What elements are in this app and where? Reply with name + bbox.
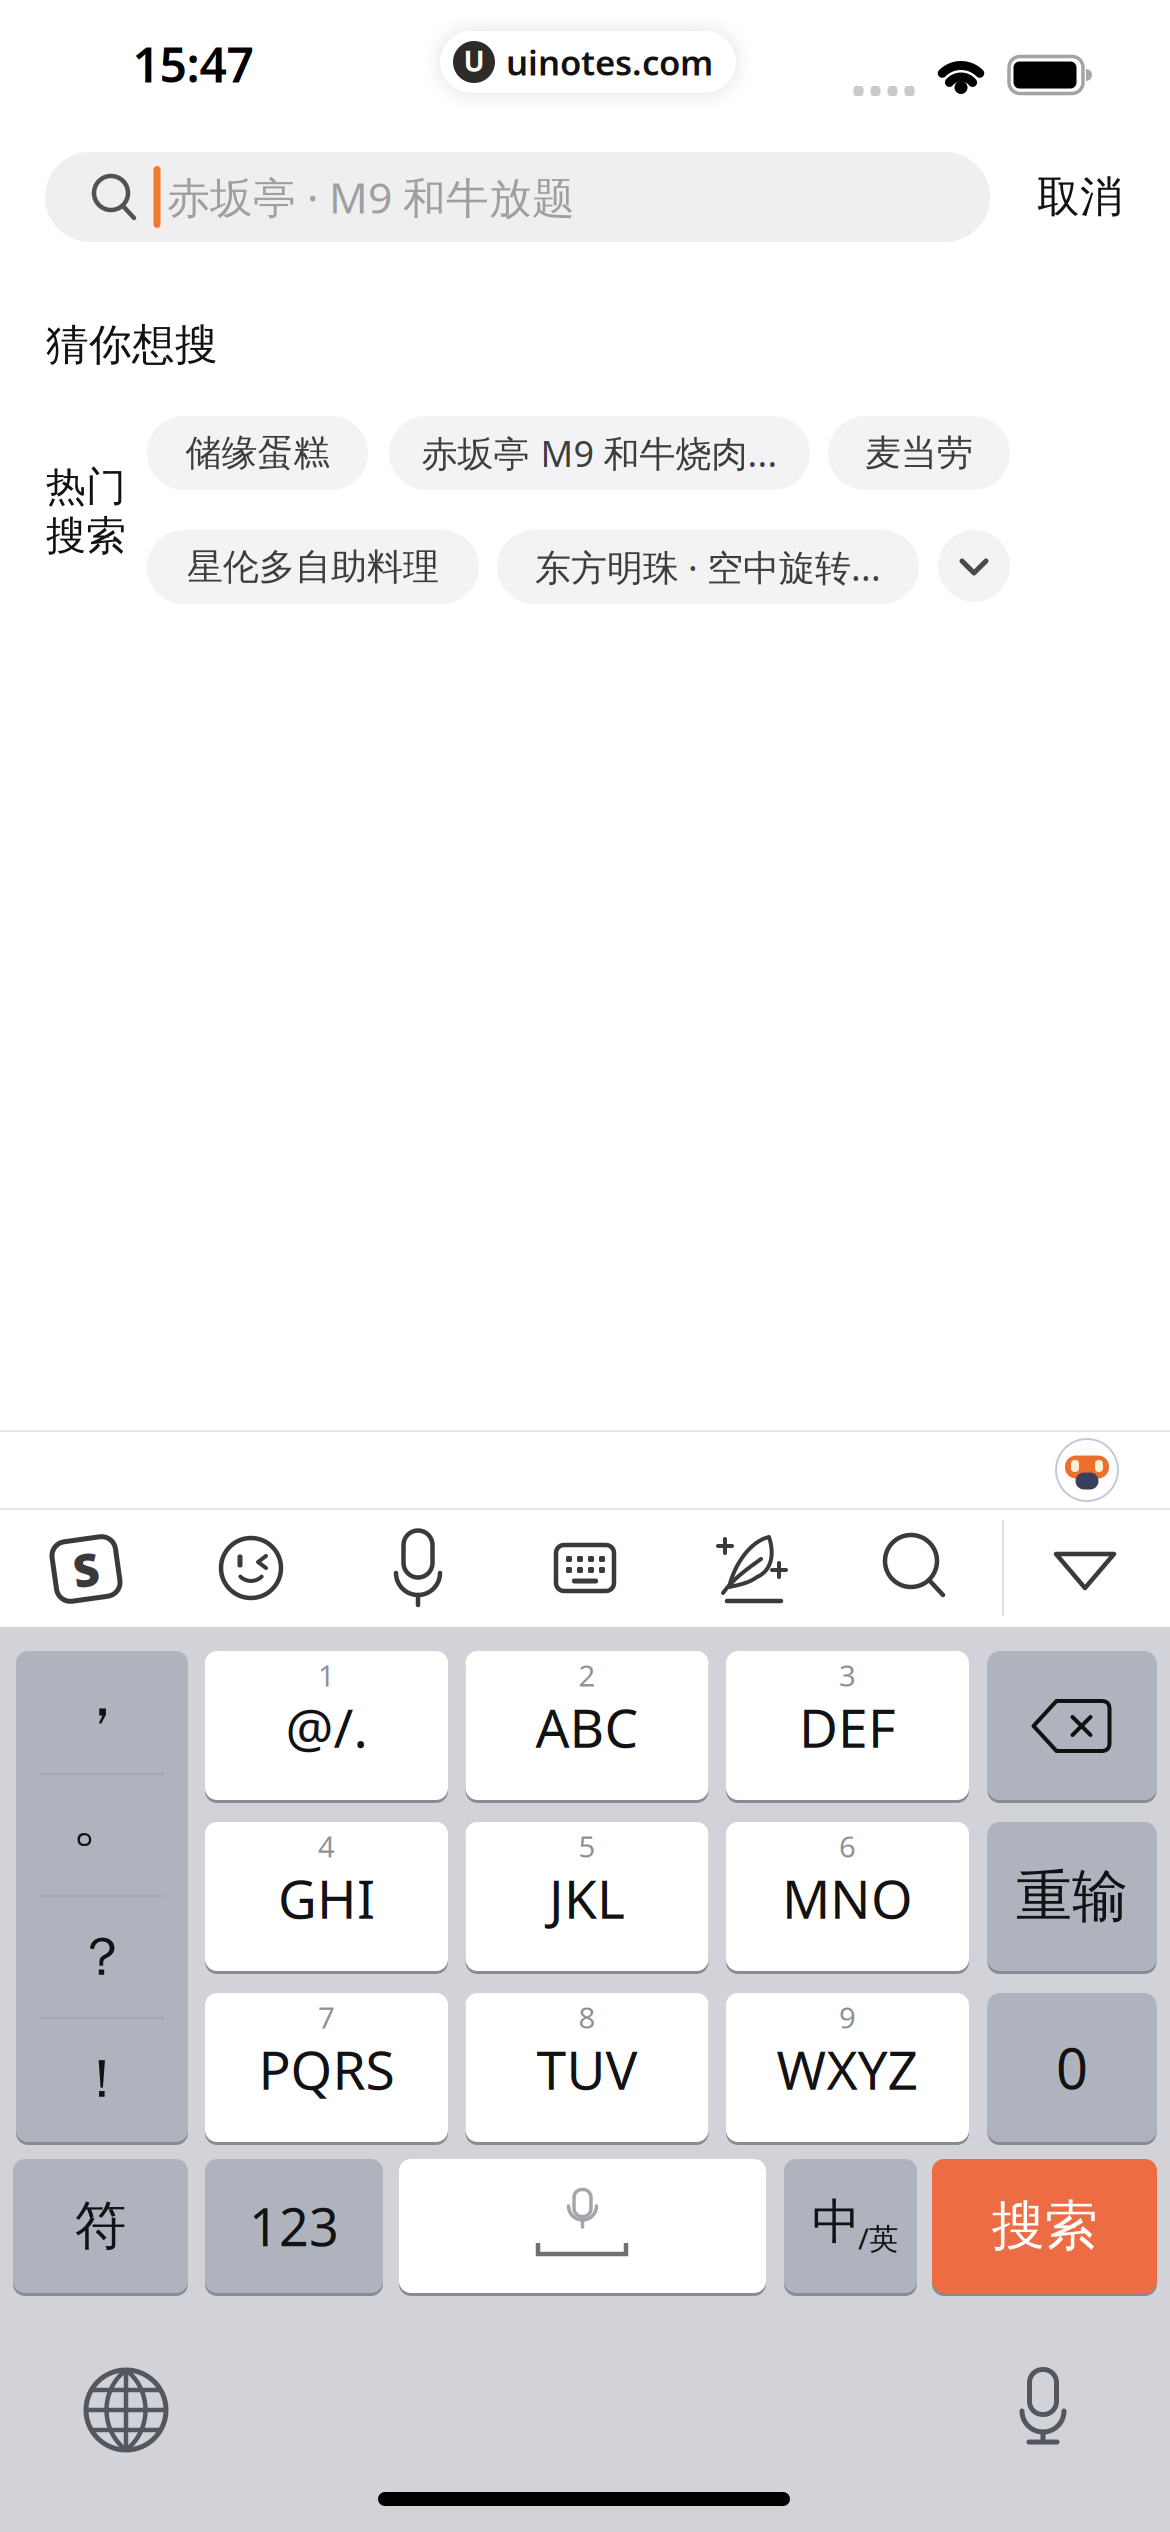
button[interactable]: 3 [726,1651,969,1800]
staticText: 麦当劳 [865,431,973,475]
staticText: WXYZ [776,2034,918,2104]
staticText: MNO [782,1863,913,1933]
staticText: 9 [839,1997,856,2036]
staticText: 重输 [1016,1862,1128,1931]
staticText: 5 [578,1826,595,1865]
staticText: 6 [839,1826,856,1865]
button[interactable]: Voice input [393,1529,443,1607]
button[interactable]: Keyboard layout [556,1545,614,1591]
staticText: 搜索 [46,511,126,560]
button[interactable]: 2 [465,1651,708,1800]
staticText: PQRS [258,2034,394,2104]
button[interactable]: Search field [45,152,990,242]
button[interactable]: Emoji [220,1537,282,1599]
button[interactable]: 符 [13,2159,188,2293]
staticText: 星伦多自助料理 [187,545,439,589]
staticText: 123 [249,2191,339,2261]
button[interactable]: 6 [726,1822,969,1971]
staticText: DEF [799,1692,896,1762]
button[interactable]: 重输 [987,1822,1156,1971]
button[interactable]: 1 [205,1651,448,1800]
staticText: 15:47 [132,32,253,96]
button[interactable]: 8 [465,1993,708,2142]
button[interactable]: Next keyboard [82,2366,170,2454]
button[interactable]: 麦当劳 [828,416,1010,490]
staticText: 猜你想搜 [46,319,218,371]
button[interactable]: ？ [16,1899,188,2017]
staticText: 。 [71,1781,132,1857]
button[interactable]: ！ [16,2021,188,2139]
staticText: 赤坂亭 M9 和牛烧肉... [421,429,777,477]
staticText: /英 [858,2218,898,2257]
staticText: GHI [278,1863,375,1933]
button[interactable]: Sogou [46,1533,126,1605]
button[interactable]: 储缘蛋糕 [147,416,368,490]
staticText: 8 [578,1997,595,2036]
staticText: 搜索 [991,2193,1097,2259]
button[interactable]: 7 [205,1993,448,2142]
button[interactable]: 5 [465,1822,708,1971]
staticText: 赤坂亭 · M9 和牛放题 [167,169,575,225]
staticText: 符 [74,2194,126,2258]
button[interactable]: Chinese / English [784,2159,917,2293]
staticText: 3 [839,1655,856,1694]
staticText: ， [71,1657,132,1733]
button[interactable]: 东方明珠 · 空中旋转... [497,530,919,604]
staticText: uinotes.com [506,39,713,85]
button[interactable]: 搜索 [932,2159,1157,2293]
staticText: 1 [318,1655,335,1694]
button[interactable]: 4 [205,1822,448,1971]
button[interactable]: 9 [726,1993,969,2142]
staticText: 4 [318,1826,335,1865]
button[interactable]: 赤坂亭 M9 和牛烧肉... [389,416,810,490]
button[interactable]: Handwriting [717,1529,789,1607]
button[interactable]: Delete [987,1651,1156,1800]
button[interactable]: 星伦多自助料理 [147,530,479,604]
staticText: 热门 [46,462,126,511]
button[interactable]: 0 [987,1993,1156,2142]
staticText: S [73,1539,99,1599]
button[interactable]: More hot searches [938,530,1010,602]
staticText: 7 [318,1997,335,2036]
staticText: U [463,42,484,80]
staticText: 0 [1056,2030,1088,2105]
staticText: JKL [549,1863,625,1933]
staticText: 东方明珠 · 空中旋转... [535,543,881,591]
staticText: @/. [285,1692,367,1762]
staticText: 取消 [1037,171,1123,223]
button[interactable]: ， [16,1653,188,1771]
button[interactable]: AI assistant [1055,1438,1119,1502]
button[interactable]: 。 [16,1776,188,1894]
button[interactable]: Hide keyboard [1053,1551,1117,1591]
button[interactable]: Dictation [1019,2368,1067,2446]
button[interactable]: Space [399,2159,766,2293]
staticText: ？ [75,1924,128,1990]
staticText: 储缘蛋糕 [185,431,329,475]
staticText: 2 [578,1655,595,1694]
staticText: ！ [75,2046,128,2112]
staticText: TUV [536,2034,637,2104]
button[interactable]: 取消 [1037,171,1123,223]
staticText: 中 [812,2192,860,2251]
button[interactable]: 123 [205,2159,383,2293]
button[interactable]: Search [883,1533,947,1599]
staticText: ABC [535,1692,638,1762]
